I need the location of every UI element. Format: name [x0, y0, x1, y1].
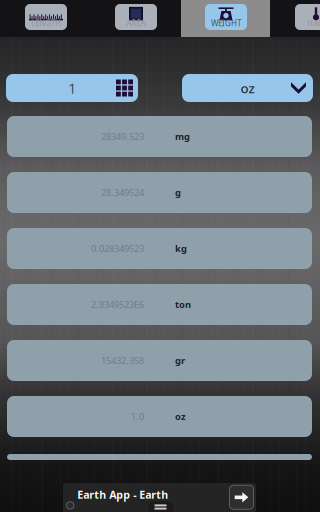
button[interactable]: LENGTH	[25, 4, 67, 30]
staticText: TEMP	[306, 18, 320, 28]
staticText: gr	[175, 354, 185, 367]
staticText: 28.349524	[101, 186, 144, 199]
button[interactable]: 1	[6, 74, 138, 102]
staticText: kg	[175, 242, 187, 255]
staticText: mg	[175, 130, 190, 143]
staticText: Earth App - Earth	[77, 488, 168, 502]
button[interactable]: 28.349524	[7, 172, 312, 213]
button[interactable]: Earth App - Earth	[63, 483, 256, 512]
button[interactable]: TEMP	[295, 4, 320, 30]
button[interactable]: oz	[182, 74, 313, 102]
button[interactable]: 28349.523	[7, 116, 312, 157]
staticText: 1.0	[131, 410, 144, 423]
staticText: LENGTH	[31, 18, 61, 28]
button[interactable]: 2.8349523E6	[7, 284, 312, 325]
button[interactable]: 1.0	[7, 396, 312, 437]
staticText: oz	[240, 79, 254, 97]
staticText: 15432.358	[101, 354, 144, 367]
staticText: ton	[175, 298, 191, 311]
staticText: 2.8349523E6	[91, 298, 144, 311]
staticText: oz	[175, 410, 186, 423]
button[interactable]: 15432.358	[7, 340, 312, 381]
staticText: 1	[68, 78, 76, 98]
staticText: AREA	[126, 18, 145, 28]
staticText: g	[175, 186, 181, 199]
staticText: WEIGHT	[211, 18, 241, 28]
button[interactable]: WEIGHT	[205, 4, 247, 30]
button[interactable]: AREA	[115, 4, 157, 30]
staticText: 0.028349523	[91, 242, 144, 255]
button[interactable]: 0.028349523	[7, 228, 312, 269]
staticText: 28349.523	[101, 130, 144, 143]
